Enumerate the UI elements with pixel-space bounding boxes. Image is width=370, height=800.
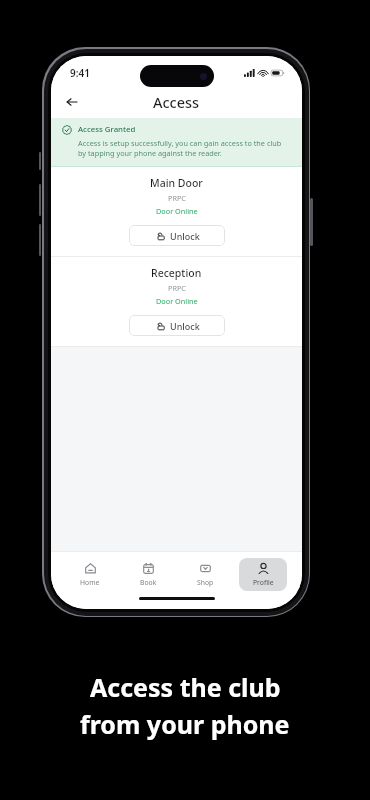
staticText: from your phone [80,707,290,741]
staticText: Main Door [150,176,203,190]
staticText: Unlock [170,230,200,242]
staticText: Door Online [156,296,198,306]
staticText: Profile [253,578,274,587]
staticText: Home [80,578,100,587]
staticText: Shop [197,578,214,587]
staticText: Door Online [156,206,198,216]
staticText: Book [140,578,157,587]
staticText: 9:41 [70,66,90,80]
button[interactable]: Unlock [129,315,225,336]
staticText: PRPC [168,283,186,293]
staticText: Access the club [90,670,281,704]
button[interactable]: Shop [181,558,229,591]
button[interactable]: Book [124,558,172,591]
staticText: Unlock [170,320,200,332]
staticText: Access is setup successfully, you can ga… [78,138,289,158]
staticText: PRPC [168,193,186,203]
staticText: Reception [151,266,202,280]
button[interactable]: Profile [239,558,287,591]
button[interactable]: Back [60,90,84,114]
staticText: Access Granted [78,124,136,135]
staticText: Access [153,92,200,112]
button[interactable]: Unlock [129,225,225,246]
button[interactable]: Home [66,558,114,591]
